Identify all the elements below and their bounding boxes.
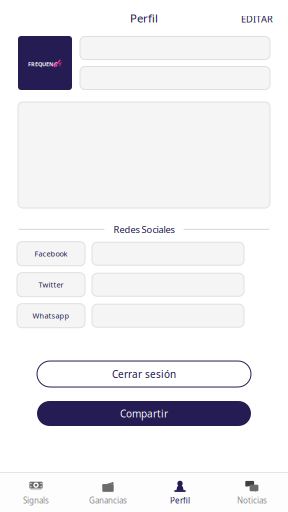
staticText: Noticias (237, 495, 267, 506)
staticText: Redes Sociales (113, 223, 174, 236)
button[interactable]: Noticias (216, 472, 288, 512)
button[interactable]: Facebook (17, 242, 85, 266)
button[interactable]: Compartir (37, 401, 251, 426)
staticText: Perfil (130, 10, 158, 26)
button[interactable]: Twitter (17, 273, 85, 297)
staticText: Perfil (170, 495, 190, 506)
staticText: Twitter (38, 280, 63, 290)
button[interactable]: Signals (0, 472, 72, 512)
button[interactable]: EDITAR (234, 7, 280, 29)
button[interactable]: Ganancias (72, 472, 144, 512)
staticText: Compartir (120, 407, 168, 420)
staticText: Signals (23, 495, 49, 506)
staticText: EDITAR (241, 13, 273, 25)
button[interactable]: Whatsapp (17, 304, 85, 328)
staticText: Facebook (34, 249, 67, 259)
staticText: Ganancias (89, 495, 127, 506)
staticText: Whatsapp (32, 311, 69, 321)
staticText: FREQUENC (28, 60, 58, 68)
staticText: Cerrar sesión (112, 367, 176, 381)
button[interactable]: Cerrar sesión (37, 361, 251, 387)
staticText: Y (58, 60, 62, 68)
button[interactable]: Perfil (144, 472, 216, 512)
